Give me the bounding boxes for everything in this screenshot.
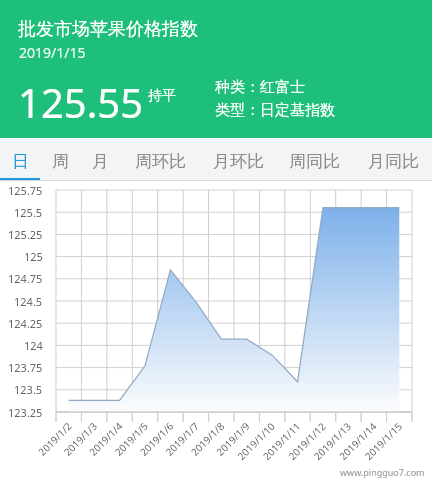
staticText: 月同比	[368, 151, 419, 172]
staticText: 周同比	[289, 151, 340, 172]
button[interactable]: 周同比	[276, 140, 353, 183]
staticText: 类型：日定基指数	[215, 101, 335, 120]
staticText: 批发市场苹果价格指数	[18, 18, 198, 41]
button[interactable]: 日	[1, 140, 40, 183]
button[interactable]: 周环比	[120, 140, 201, 183]
staticText: 日	[12, 151, 29, 172]
button[interactable]: 周	[40, 140, 81, 183]
staticText: 月环比	[213, 151, 264, 172]
staticText: 周	[52, 151, 69, 172]
staticText: 周环比	[135, 151, 186, 172]
button[interactable]: 月环比	[201, 140, 276, 183]
staticText: 持平	[148, 87, 176, 105]
staticText: 月	[92, 151, 109, 172]
button[interactable]: 月	[81, 140, 120, 183]
button[interactable]: 月同比	[353, 140, 432, 183]
staticText: 2019/1/15	[19, 43, 86, 62]
staticText: 种类：红富士	[215, 78, 305, 97]
staticText: 125.55	[18, 75, 144, 129]
